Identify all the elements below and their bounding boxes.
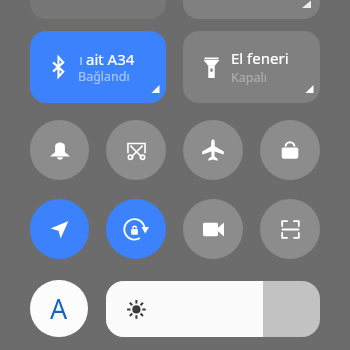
button[interactable]: El feneri [183, 31, 320, 103]
button[interactable]: Screen lock [260, 120, 320, 180]
button[interactable]: Scan QR code [260, 199, 320, 259]
button[interactable]: Airplane mode [183, 120, 243, 180]
staticText: Bağlandı [78, 68, 130, 85]
button[interactable]: Mobile data [183, 0, 320, 19]
staticText: ait A34 [86, 49, 135, 67]
button[interactable]: Screen cast [106, 120, 166, 180]
staticText: A [50, 290, 68, 327]
button[interactable]: Screen record [183, 199, 243, 259]
staticText: Kapalı [231, 69, 267, 86]
button[interactable]: Auto brightness [30, 280, 88, 337]
button[interactable]: Auto rotate [106, 199, 166, 259]
staticText: dı [78, 49, 84, 67]
button[interactable]: Brightness [106, 281, 320, 337]
button[interactable]: Location [30, 199, 89, 259]
button[interactable]: Notifications [30, 120, 89, 180]
staticText: El feneri [231, 48, 289, 68]
button[interactable]: dı [30, 31, 166, 103]
